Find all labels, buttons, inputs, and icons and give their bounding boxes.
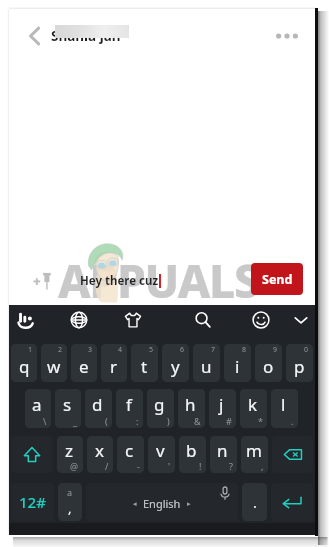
- staticText: v: [156, 439, 165, 462]
- button[interactable]: More options: [271, 20, 303, 52]
- button[interactable]: .: [242, 483, 267, 521]
- staticText: *: [258, 415, 263, 427]
- staticText: 3: [88, 345, 93, 355]
- staticText: Shania jan: [51, 27, 121, 45]
- staticText: @: [70, 460, 79, 472]
- button[interactable]: d: [85, 389, 112, 428]
- staticText: y: [171, 355, 180, 378]
- button[interactable]: f: [116, 389, 143, 428]
- button[interactable]: j: [209, 389, 236, 428]
- button[interactable]: 5: [131, 344, 158, 382]
- button[interactable]: c: [117, 436, 144, 473]
- button[interactable]: m: [241, 436, 268, 473]
- staticText: b: [186, 439, 197, 462]
- staticText: .: [253, 493, 257, 512]
- button[interactable]: ◂: [86, 483, 238, 521]
- button[interactable]: x: [87, 436, 113, 473]
- staticText: o: [263, 355, 274, 378]
- staticText: ): [167, 415, 170, 427]
- button[interactable]: Attach: [29, 265, 61, 297]
- staticText: g: [154, 393, 165, 416]
- button[interactable]: 3: [71, 344, 97, 382]
- button[interactable]: Collapse: [286, 305, 316, 335]
- staticText: English: [143, 496, 181, 511]
- staticText: p: [294, 355, 305, 378]
- button[interactable]: Enter: [271, 483, 313, 521]
- staticText: 9: [273, 345, 278, 355]
- staticText: h: [185, 393, 196, 416]
- staticText: c: [125, 439, 134, 462]
- staticText: 7: [211, 345, 216, 355]
- staticText: n: [217, 439, 228, 462]
- button[interactable]: a: [58, 483, 82, 521]
- staticText: ▸: [187, 500, 191, 508]
- staticText: k: [248, 393, 258, 416]
- staticText: .: [291, 415, 294, 427]
- staticText: 5: [149, 345, 154, 355]
- button[interactable]: Stickers: [118, 305, 148, 335]
- button[interactable]: s: [55, 389, 81, 428]
- staticText: d: [92, 393, 103, 416]
- button[interactable]: g: [147, 389, 174, 428]
- button[interactable]: Backspace: [272, 436, 313, 473]
- button[interactable]: Language: [64, 305, 94, 335]
- staticText: Hey there cuz: [80, 273, 159, 289]
- staticText: 4: [118, 345, 123, 355]
- button[interactable]: 1: [11, 344, 37, 382]
- staticText: ?: [229, 460, 233, 472]
- staticText: ,: [68, 499, 72, 517]
- button[interactable]: 2: [41, 344, 67, 382]
- staticText: Send: [262, 271, 293, 288]
- staticText: x: [95, 439, 104, 462]
- staticText: -: [137, 460, 140, 472]
- staticText: ◂: [133, 500, 137, 508]
- button[interactable]: 9: [255, 344, 282, 382]
- staticText: /: [105, 460, 109, 472]
- staticText: a: [32, 393, 42, 416]
- button[interactable]: l: [271, 389, 298, 428]
- staticText: 1: [28, 345, 33, 355]
- staticText: \: [43, 415, 47, 427]
- staticText: 6: [180, 345, 185, 355]
- button[interactable]: a: [25, 389, 51, 428]
- staticText: ,: [261, 460, 264, 472]
- staticText: w: [47, 355, 61, 378]
- button[interactable]: n: [210, 436, 237, 473]
- staticText: ': [168, 460, 171, 472]
- button[interactable]: b: [179, 436, 206, 473]
- staticText: q: [19, 355, 30, 378]
- staticText: (: [105, 415, 108, 427]
- button[interactable]: 0: [286, 344, 313, 382]
- staticText: 12#: [19, 492, 46, 512]
- staticText: r: [110, 355, 118, 378]
- button[interactable]: h: [178, 389, 205, 428]
- button[interactable]: Send: [251, 263, 303, 295]
- button[interactable]: k: [240, 389, 267, 428]
- staticText: i: [235, 355, 240, 378]
- staticText: 0: [304, 345, 309, 355]
- staticText: a: [67, 486, 73, 498]
- staticText: APPUALS: [58, 249, 259, 312]
- button[interactable]: 8: [224, 344, 251, 382]
- button[interactable]: 7: [193, 344, 220, 382]
- staticText: !: [199, 460, 202, 472]
- button[interactable]: Search: [188, 305, 218, 335]
- button[interactable]: 4: [101, 344, 127, 382]
- staticText: _: [73, 415, 77, 427]
- staticText: z: [65, 439, 73, 462]
- staticText: &: [194, 415, 201, 427]
- button[interactable]: v: [148, 436, 175, 473]
- button[interactable]: Handwriting: [12, 305, 42, 335]
- button[interactable]: 6: [162, 344, 189, 382]
- staticText: f: [126, 393, 132, 416]
- staticText: #: [226, 415, 232, 427]
- button[interactable]: Emoji: [246, 305, 276, 335]
- button[interactable]: Shift: [11, 436, 53, 473]
- button[interactable]: z: [57, 436, 83, 473]
- staticText: u: [201, 355, 212, 378]
- button[interactable]: 12#: [11, 483, 54, 521]
- button[interactable]: Back: [18, 20, 50, 52]
- staticText: e: [79, 355, 89, 378]
- staticText: m: [246, 439, 262, 462]
- staticText: l: [281, 393, 286, 416]
